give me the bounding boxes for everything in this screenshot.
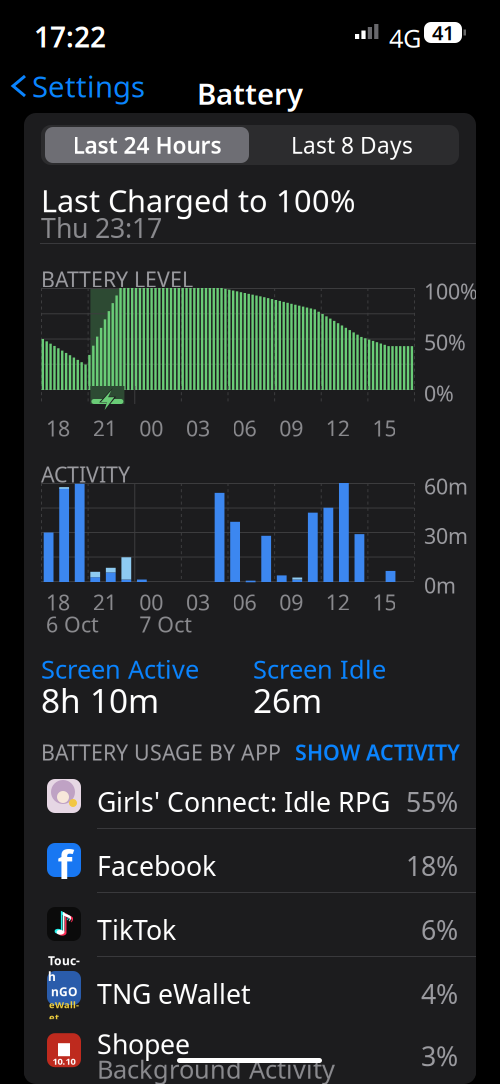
staticText: Last Charged to 100% xyxy=(41,180,355,221)
button[interactable]: ♪ xyxy=(24,893,476,956)
staticText: nGO xyxy=(51,984,77,999)
button[interactable]: f xyxy=(24,829,476,892)
staticText: 03 xyxy=(186,414,210,442)
staticText: 4G xyxy=(389,21,421,55)
button[interactable]: Girls' Connect: Idle RPG xyxy=(24,765,476,828)
staticText: 21 xyxy=(93,588,117,616)
staticText: Screen Idle xyxy=(253,652,386,686)
staticText: 7 Oct xyxy=(139,610,192,638)
staticText: Settings xyxy=(32,66,145,105)
staticText: f xyxy=(57,838,72,890)
staticText: TNG eWallet xyxy=(97,976,251,1011)
staticText: Facebook xyxy=(97,848,216,883)
staticText: 18 xyxy=(46,414,70,442)
button[interactable]: Last 8 Days xyxy=(249,127,455,163)
staticText: 09 xyxy=(279,588,303,616)
staticText: 17:22 xyxy=(34,18,106,55)
staticText: SHOW ACTIVITY xyxy=(295,738,460,766)
staticText: 15 xyxy=(372,588,396,616)
staticText: 00 xyxy=(139,588,163,616)
staticText: 15 xyxy=(372,414,396,442)
staticText: eWallet xyxy=(49,998,79,1023)
staticText: Screen Active xyxy=(41,652,199,686)
staticText: 55% xyxy=(406,784,458,819)
staticText: 06 xyxy=(232,414,256,442)
staticText: 8h 10m xyxy=(41,678,159,722)
staticText: 09 xyxy=(279,414,303,442)
staticText: 6 Oct xyxy=(46,610,99,638)
staticText: Girls' Connect: Idle RPG xyxy=(97,784,390,819)
staticText: 12 xyxy=(326,414,350,442)
staticText: 26m xyxy=(253,678,322,722)
staticText: 10.10 xyxy=(52,1055,75,1067)
staticText: ♪ xyxy=(56,908,76,942)
staticText: Last 24 Hours xyxy=(72,130,221,160)
staticText: ♪ xyxy=(52,906,72,940)
staticText: BATTERY USAGE BY APP xyxy=(41,738,281,766)
staticText: 03 xyxy=(186,588,210,616)
staticText: 100% xyxy=(424,277,478,305)
staticText: ACTIVITY xyxy=(41,460,130,488)
staticText: 3% xyxy=(421,1038,458,1074)
staticText: 60m xyxy=(424,472,468,500)
staticText: 0m xyxy=(424,571,456,599)
staticText: 18% xyxy=(406,848,458,883)
button[interactable]: Settings xyxy=(0,63,157,109)
staticText: 18 xyxy=(46,588,70,616)
button[interactable]: 10.10 xyxy=(24,1021,476,1084)
staticText: Last 8 Days xyxy=(291,130,413,160)
staticText: ♪ xyxy=(54,907,74,941)
button[interactable]: SHOW ACTIVITY xyxy=(24,738,460,766)
staticText: 50% xyxy=(424,328,466,356)
staticText: 4% xyxy=(421,976,458,1011)
staticText: BATTERY LEVEL xyxy=(41,265,193,293)
staticText: TikTok xyxy=(97,912,176,947)
staticText: Shopee xyxy=(97,1026,190,1062)
staticText: 0% xyxy=(424,379,454,407)
staticText: Background Activity xyxy=(97,1052,335,1084)
button[interactable]: Last 24 Hours xyxy=(45,127,249,163)
staticText: Battery xyxy=(197,74,303,113)
button[interactable]: Touch xyxy=(24,957,476,1020)
staticText: 41 xyxy=(432,19,454,46)
staticText: 12 xyxy=(326,588,350,616)
staticText: Touch xyxy=(48,953,80,985)
staticText: 00 xyxy=(139,414,163,442)
staticText: 06 xyxy=(232,588,256,616)
staticText: 30m xyxy=(424,521,468,550)
staticText: Thu 23:17 xyxy=(41,210,162,245)
staticText: 21 xyxy=(93,414,117,442)
staticText: 6% xyxy=(421,912,458,947)
